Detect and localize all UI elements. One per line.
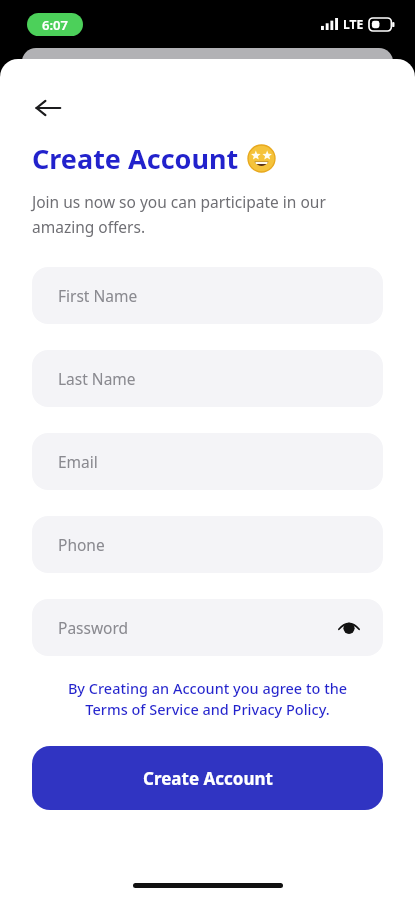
button[interactable]: Create Account [32,746,383,810]
button[interactable]: Password [32,599,383,656]
button[interactable]: First Name [32,267,383,324]
staticText: First Name [58,285,138,306]
staticText: Phone [58,534,105,555]
button[interactable]: Email [32,433,383,490]
staticText: Join us now so you can participate in ou… [32,191,326,238]
button[interactable]: Show password [335,614,363,642]
staticText: Password [58,617,129,638]
staticText: Create Account [143,767,273,790]
staticText: LTE [343,16,364,32]
staticText: Create Account [32,140,239,177]
button[interactable]: Last Name [32,350,383,407]
staticText: Email [58,451,98,472]
staticText: Last Name [58,368,136,389]
button[interactable]: By Creating an Account you agree to the … [28,678,387,720]
staticText: 6:07 [42,16,68,34]
button[interactable]: Phone [32,516,383,573]
button[interactable]: Back [26,86,70,130]
